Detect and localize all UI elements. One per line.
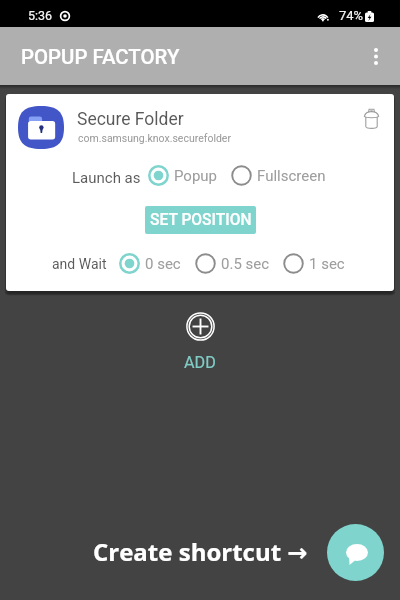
- staticText: 5:36: [28, 8, 53, 23]
- staticText: and Wait: [52, 256, 107, 272]
- button[interactable]: Delete: [350, 98, 392, 140]
- button[interactable]: Chat: [327, 524, 384, 581]
- staticText: Popup: [174, 167, 218, 185]
- staticText: 1 sec: [309, 255, 345, 273]
- button[interactable]: Popup: [148, 165, 218, 186]
- button[interactable]: 1 sec: [283, 253, 345, 274]
- staticText: SET POSITION: [150, 211, 252, 229]
- staticText: Launch as: [72, 169, 141, 187]
- button[interactable]: More options: [352, 32, 400, 80]
- staticText: 0.5 sec: [221, 255, 270, 273]
- staticText: Secure Folder: [77, 109, 184, 130]
- button[interactable]: SET POSITION: [145, 206, 256, 234]
- button[interactable]: 0.5 sec: [195, 253, 270, 274]
- staticText: Fullscreen: [257, 167, 326, 185]
- staticText: POPUP FACTORY: [21, 45, 180, 69]
- button[interactable]: Fullscreen: [231, 165, 326, 186]
- staticText: ADD: [184, 353, 216, 372]
- button[interactable]: 0 sec: [119, 253, 181, 274]
- staticText: 0 sec: [145, 255, 181, 273]
- staticText: 74%: [339, 8, 364, 23]
- staticText: com.samsung.knox.securefolder: [78, 132, 231, 144]
- button[interactable]: ADD: [184, 312, 216, 372]
- button[interactable]: Create shortcut →: [93, 535, 308, 568]
